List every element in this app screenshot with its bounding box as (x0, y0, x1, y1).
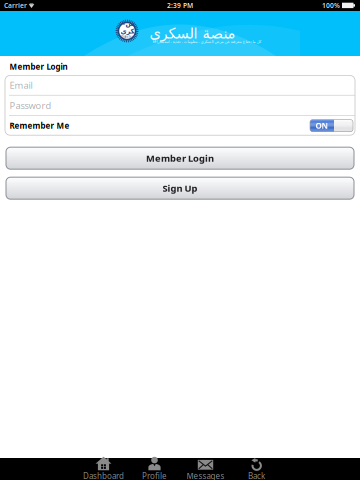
button[interactable]: Back (231, 458, 282, 480)
button[interactable]: Member Login (6, 147, 354, 169)
staticText: Remember Me (9, 120, 69, 131)
button[interactable]: Email (5, 75, 355, 95)
button[interactable]: Dashboard (78, 458, 129, 480)
staticText: Password (9, 99, 51, 112)
button[interactable]: Profile (129, 458, 180, 480)
staticText: Member Login (9, 61, 67, 72)
staticText: ON (315, 120, 328, 131)
staticText: Profile (142, 471, 167, 480)
staticText: Dashboard (83, 471, 124, 480)
staticText: Sign Up (162, 182, 197, 194)
staticText: Messages (186, 471, 224, 480)
staticText: Email (9, 79, 32, 91)
staticText: Diabetes (121, 35, 133, 38)
button[interactable]: Sign Up (6, 177, 354, 199)
staticText: 2:39 PM (167, 1, 193, 10)
staticText: منصة السكري (149, 25, 235, 42)
staticText: 100% (322, 1, 340, 10)
staticText: كل ما تحتاج معرفته عن مرض السكري - معلوم… (152, 39, 261, 44)
button[interactable]: Messages (180, 458, 231, 480)
button[interactable]: Password (5, 95, 355, 115)
staticText: سكري (120, 20, 134, 35)
staticText: Back (248, 471, 265, 480)
staticText: Carrier (4, 1, 27, 10)
staticText: Member Login (146, 152, 214, 164)
button[interactable]: Remember Me (310, 120, 353, 132)
